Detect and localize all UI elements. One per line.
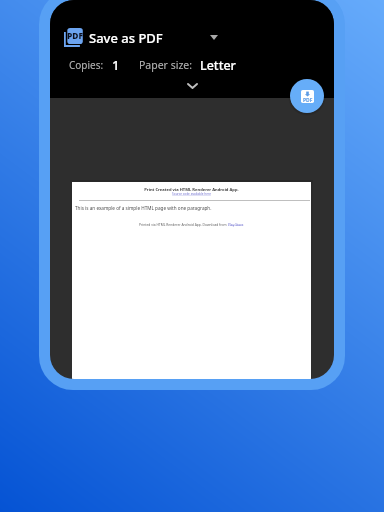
- staticText: PDF: [67, 30, 83, 41]
- staticText: 1: [112, 56, 120, 74]
- staticText: This is an example of a simple HTML page…: [75, 205, 212, 211]
- staticText: PDF: [303, 97, 313, 104]
- staticText: Print Created via HTML Renderer Android …: [72, 187, 311, 193]
- button[interactable]: Source code available here: [72, 192, 311, 196]
- staticText: Save as PDF: [89, 29, 163, 47]
- button[interactable]: Expand print options: [176, 70, 208, 102]
- staticText: Paper size:: [139, 58, 193, 72]
- button[interactable]: Save as PDF: [290, 79, 324, 113]
- staticText: Letter: [200, 57, 236, 74]
- staticText: Printed via HTML Renderer Android App. D…: [139, 222, 228, 226]
- button[interactable]: Play Store: [228, 222, 244, 226]
- button[interactable]: PDF: [58, 23, 238, 53]
- staticText: Copies:: [69, 58, 104, 72]
